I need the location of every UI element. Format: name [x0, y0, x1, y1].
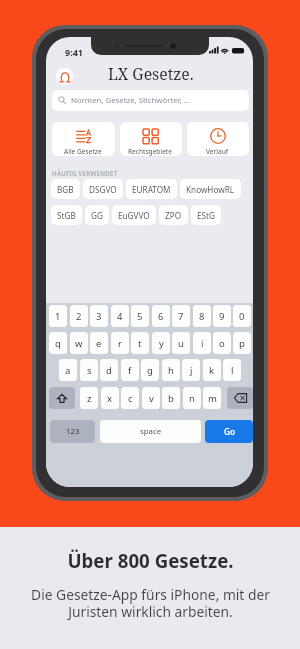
button[interactable]: w — [70, 332, 88, 354]
staticText: StGB — [57, 210, 76, 221]
button[interactable]: p — [233, 332, 251, 354]
staticText: h — [168, 364, 174, 377]
button[interactable]: Umschalt — [49, 387, 75, 409]
button[interactable]: g — [141, 359, 159, 381]
button[interactable]: Verlauf — [187, 122, 249, 156]
button[interactable]: n — [183, 387, 201, 409]
button[interactable]: l — [223, 359, 241, 381]
button[interactable]: d — [100, 359, 118, 381]
button[interactable]: BGB — [51, 179, 80, 199]
staticText: 6 — [158, 310, 164, 323]
staticText: p — [239, 337, 245, 350]
button[interactable]: 6 — [152, 305, 170, 327]
staticText: Go — [224, 426, 235, 437]
staticText: v — [149, 392, 154, 405]
staticText: c — [128, 392, 133, 405]
staticText: Normen, Gesetze, Stichwörter, ... — [71, 95, 190, 106]
staticText: z — [87, 392, 92, 405]
button[interactable]: space — [100, 420, 201, 443]
button[interactable]: DSGVO — [83, 179, 123, 199]
staticText: LX Gesetze. — [108, 63, 194, 85]
staticText: a — [65, 364, 71, 377]
staticText: j — [190, 364, 193, 377]
button[interactable]: k — [203, 359, 221, 381]
button[interactable]: 1 — [49, 305, 67, 327]
button[interactable]: y — [152, 332, 170, 354]
button[interactable]: Normen, Gesetze, Stichwörter, ... — [52, 90, 249, 111]
button[interactable]: a — [59, 359, 77, 381]
button[interactable]: Profil — [56, 68, 73, 85]
staticText: GG — [91, 210, 103, 221]
button[interactable]: 8 — [193, 305, 211, 327]
staticText: 5 — [137, 310, 143, 323]
button[interactable]: Alle Gesetze — [52, 122, 115, 156]
staticText: l — [231, 364, 234, 377]
staticText: Verlauf — [206, 147, 229, 156]
staticText: EuGVVO — [118, 210, 150, 221]
staticText: 7 — [178, 310, 184, 323]
button[interactable]: EURATOM — [126, 179, 177, 199]
button[interactable]: h — [162, 359, 180, 381]
staticText: Alle Gesetze — [64, 147, 102, 156]
button[interactable]: Löschen — [227, 387, 253, 409]
button[interactable]: t — [131, 332, 149, 354]
button[interactable]: e — [90, 332, 108, 354]
button[interactable]: 5 — [131, 305, 149, 327]
staticText: EStG — [197, 210, 215, 221]
button[interactable]: 7 — [172, 305, 190, 327]
staticText: b — [168, 392, 174, 405]
staticText: Juristen wirklich arbeiten. — [68, 602, 233, 621]
button[interactable]: b — [162, 387, 180, 409]
button[interactable]: r — [111, 332, 129, 354]
staticText: 4 — [117, 310, 123, 323]
button[interactable]: Go — [205, 420, 253, 443]
staticText: w — [75, 337, 83, 350]
staticText: Rechtsgebiete — [128, 147, 172, 156]
button[interactable]: x — [101, 387, 119, 409]
button[interactable]: 9 — [213, 305, 231, 327]
button[interactable]: z — [80, 387, 98, 409]
staticText: space — [140, 426, 162, 437]
staticText: d — [106, 364, 112, 377]
staticText: i — [201, 337, 204, 350]
button[interactable]: 0 — [233, 305, 251, 327]
staticText: 3 — [96, 310, 102, 323]
staticText: HÄUFIG VERWENDET — [52, 169, 118, 177]
staticText: u — [178, 337, 184, 350]
staticText: k — [209, 364, 215, 377]
staticText: Die Gesetze-App fürs iPhone, mit der — [31, 585, 270, 604]
button[interactable]: j — [182, 359, 200, 381]
button[interactable]: GG — [85, 205, 109, 225]
button[interactable]: StGB — [51, 205, 82, 225]
button[interactable]: 3 — [90, 305, 108, 327]
button[interactable]: v — [142, 387, 160, 409]
button[interactable]: Rechtsgebiete — [120, 122, 182, 156]
button[interactable]: ZPO — [159, 205, 188, 225]
button[interactable]: i — [193, 332, 211, 354]
staticText: EURATOM — [132, 184, 171, 195]
button[interactable]: EuGVVO — [112, 205, 156, 225]
button[interactable]: o — [213, 332, 231, 354]
staticText: 0 — [239, 310, 245, 323]
button[interactable]: s — [80, 359, 98, 381]
button[interactable]: q — [49, 332, 67, 354]
staticText: q — [55, 337, 61, 350]
staticText: e — [96, 337, 102, 350]
button[interactable]: 2 — [70, 305, 88, 327]
staticText: 8 — [199, 310, 205, 323]
staticText: DSGVO — [89, 184, 117, 195]
staticText: s — [87, 364, 92, 377]
staticText: 9:41 — [65, 46, 83, 58]
button[interactable]: m — [203, 387, 221, 409]
button[interactable]: f — [121, 359, 139, 381]
staticText: 1 — [55, 310, 61, 323]
staticText: BGB — [57, 184, 74, 195]
staticText: m — [208, 392, 217, 405]
button[interactable]: KnowHowRL — [180, 179, 241, 199]
button[interactable]: 4 — [111, 305, 129, 327]
button[interactable]: 123 — [50, 420, 95, 443]
button[interactable]: u — [172, 332, 190, 354]
staticText: 123 — [66, 426, 80, 437]
button[interactable]: c — [121, 387, 139, 409]
button[interactable]: EStG — [191, 205, 221, 225]
